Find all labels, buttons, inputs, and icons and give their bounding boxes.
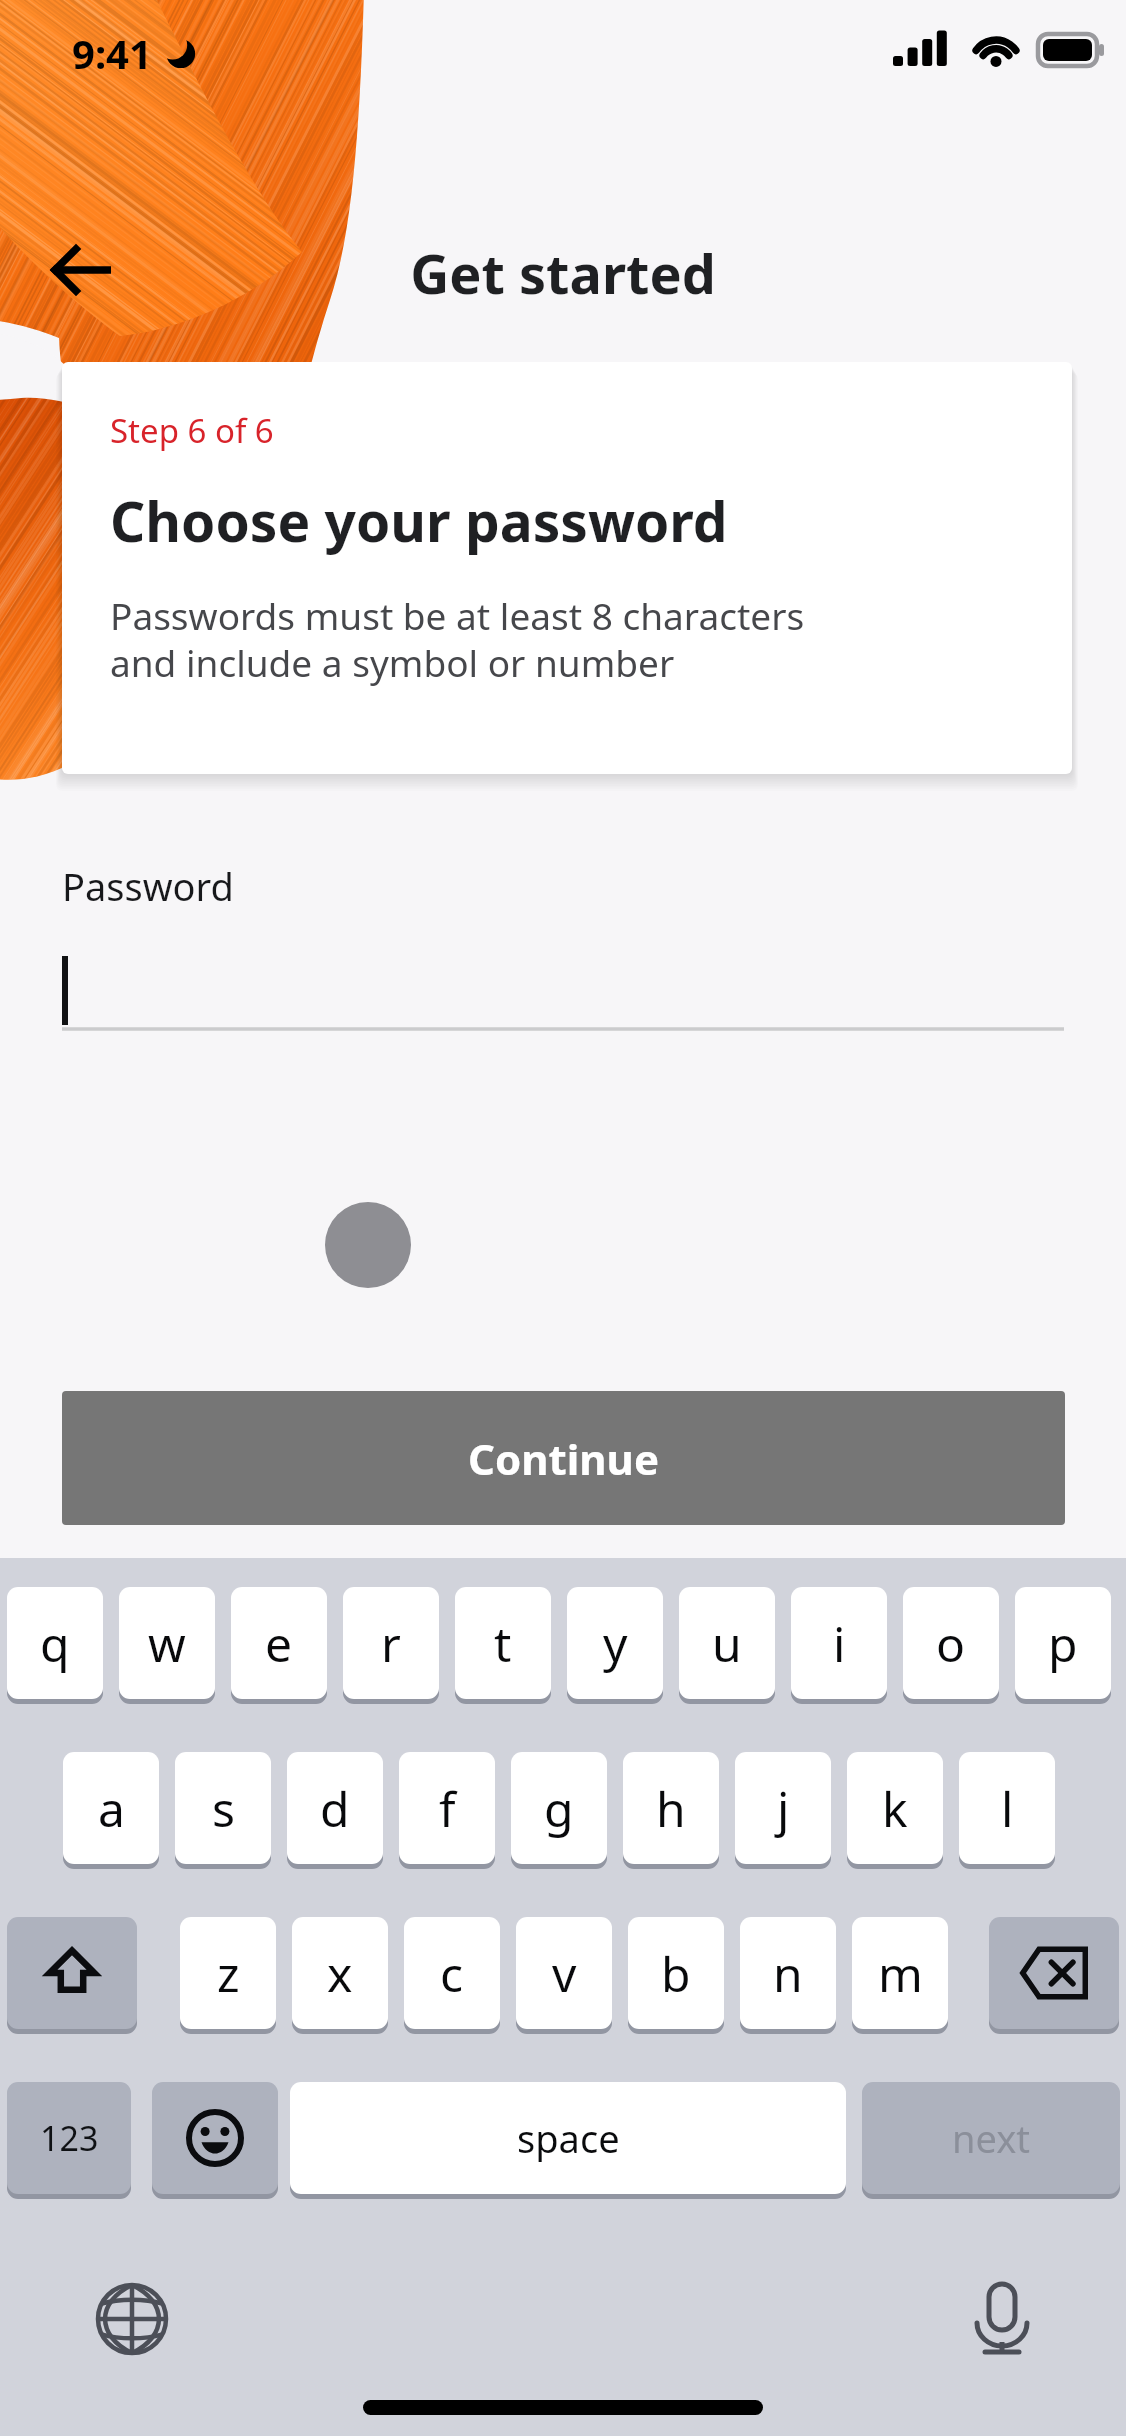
button[interactable]: f [399, 1752, 495, 1864]
staticText: x [327, 1941, 353, 2006]
button[interactable]: r [343, 1587, 439, 1699]
staticText: a [98, 1776, 125, 1841]
button[interactable]: u [679, 1587, 775, 1699]
staticText: n [773, 1941, 803, 2006]
button[interactable]: c [404, 1917, 500, 2029]
staticText: r [381, 1611, 401, 1676]
staticText: q [40, 1611, 70, 1676]
button[interactable]: Emoji [152, 2082, 278, 2194]
staticText: t [494, 1611, 512, 1676]
staticText: k [882, 1776, 908, 1841]
button[interactable]: s [175, 1752, 271, 1864]
staticText: Get started [0, 236, 1126, 310]
staticText: Step 6 of 6 [110, 408, 274, 453]
staticText: Passwords must be at least 8 characters … [110, 590, 805, 688]
button[interactable]: g [511, 1752, 607, 1864]
staticText: Choose your password [110, 483, 728, 558]
staticText: h [656, 1776, 686, 1841]
button[interactable]: k [847, 1752, 943, 1864]
staticText: g [544, 1776, 574, 1841]
staticText: p [1048, 1611, 1078, 1676]
staticText: next [952, 2112, 1030, 2164]
button[interactable]: i [791, 1587, 887, 1699]
button[interactable]: b [628, 1917, 724, 2029]
button[interactable]: l [959, 1752, 1055, 1864]
staticText: v [552, 1941, 577, 2006]
button[interactable]: e [231, 1587, 327, 1699]
staticText: f [439, 1776, 456, 1841]
button[interactable]: h [623, 1752, 719, 1864]
button[interactable]: t [455, 1587, 551, 1699]
staticText: u [712, 1611, 742, 1676]
button[interactable]: j [735, 1752, 831, 1864]
button[interactable]: Backspace [989, 1917, 1119, 2029]
button[interactable]: Password [62, 860, 1064, 1032]
button[interactable]: space [290, 2082, 846, 2194]
button[interactable]: z [180, 1917, 276, 2029]
button[interactable]: Continue [62, 1391, 1065, 1525]
staticText: Password [62, 860, 234, 912]
staticText: 123 [40, 2115, 99, 2161]
staticText: o [936, 1611, 966, 1676]
staticText: d [320, 1776, 350, 1841]
button[interactable]: v [516, 1917, 612, 2029]
button[interactable]: w [119, 1587, 215, 1699]
staticText: space [517, 2112, 620, 2164]
staticText: w [148, 1611, 186, 1676]
button[interactable]: d [287, 1752, 383, 1864]
staticText: m [878, 1941, 923, 2006]
button[interactable]: m [852, 1917, 948, 2029]
button[interactable]: Change keyboard [90, 2277, 174, 2361]
staticText: l [1001, 1776, 1014, 1841]
button[interactable]: Shift [7, 1917, 137, 2029]
button[interactable]: o [903, 1587, 999, 1699]
staticText: c [440, 1941, 464, 2006]
staticText: z [217, 1941, 240, 2006]
button[interactable]: next [862, 2082, 1120, 2194]
staticText: b [661, 1941, 691, 2006]
staticText: 9:41 [72, 26, 152, 80]
staticText: e [265, 1611, 293, 1676]
button[interactable]: Back [38, 226, 126, 314]
button[interactable]: Step 6 of 6 [62, 362, 1072, 774]
staticText: Continue [468, 1430, 659, 1487]
button[interactable]: Avatar [325, 1202, 411, 1288]
staticText: y [603, 1611, 628, 1676]
staticText: i [833, 1611, 846, 1676]
button[interactable]: q [7, 1587, 103, 1699]
button[interactable]: y [567, 1587, 663, 1699]
staticText: s [212, 1776, 235, 1841]
button[interactable]: p [1015, 1587, 1111, 1699]
button[interactable]: Dictate [960, 2275, 1044, 2359]
button[interactable]: 123 [7, 2082, 131, 2194]
button[interactable]: n [740, 1917, 836, 2029]
staticText: j [777, 1776, 790, 1841]
button[interactable]: x [292, 1917, 388, 2029]
button[interactable]: a [63, 1752, 159, 1864]
